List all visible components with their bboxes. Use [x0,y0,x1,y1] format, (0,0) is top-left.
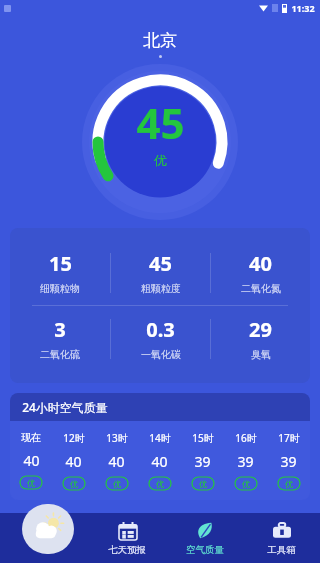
staticText: 优 [70,479,78,489]
staticText: 12时 [63,431,85,445]
button[interactable]: Weather [22,504,74,554]
button[interactable]: 14时 [138,431,181,490]
staticText: 11:32 [291,2,315,14]
staticText: 45 [149,250,172,277]
staticText: 39 [280,452,297,471]
staticText: 40 [65,452,82,471]
staticText: 14时 [149,431,171,445]
staticText: 24小时空气质量 [22,399,108,415]
staticText: 工具箱 [267,544,296,556]
staticText: 16时 [235,431,257,445]
button[interactable]: 3 [10,316,110,361]
staticText: 优 [242,479,250,489]
button[interactable]: 40 [211,250,310,295]
button[interactable]: 空气质量 [166,513,243,563]
button[interactable]: 现在 [10,431,52,489]
staticText: 粗颗粒度 [141,282,181,295]
staticText: 29 [249,316,272,343]
staticText: 二氧化硫 [40,348,80,361]
staticText: 优 [285,479,293,489]
staticText: 七天预报 [108,544,146,556]
staticText: 二氧化氮 [241,282,281,295]
staticText: 45 [136,94,185,151]
staticText: 3 [54,316,66,343]
staticText: 39 [237,452,254,471]
staticText: 空气质量 [186,544,224,556]
button[interactable]: 16时 [224,431,267,490]
staticText: 优 [154,152,167,168]
staticText: 15 [49,250,72,277]
staticText: 39 [194,452,211,471]
staticText: 优 [27,478,35,488]
staticText: 优 [113,479,121,489]
button[interactable]: 12时 [52,431,95,490]
staticText: 13时 [106,431,128,445]
button[interactable]: 0.3 [111,316,210,361]
button[interactable]: 15时 [181,431,224,490]
staticText: 北京 [0,30,320,51]
staticText: 细颗粒物 [40,282,80,295]
staticText: 40 [108,452,125,471]
staticText: 现在 [21,431,41,444]
button[interactable]: 七天预报 [88,513,166,563]
button[interactable]: 45 [111,250,210,295]
staticText: 优 [156,479,164,489]
button[interactable]: 工具箱 [243,513,320,563]
staticText: 臭氧 [251,348,271,361]
staticText: 优 [199,479,207,489]
button[interactable]: 15 [10,250,110,295]
button[interactable]: 17时 [267,431,310,490]
button[interactable]: 13时 [95,431,138,490]
staticText: 40 [151,452,168,471]
staticText: 17时 [278,431,300,445]
staticText: 一氧化碳 [141,348,181,361]
staticText: 15时 [192,431,214,445]
staticText: 40 [249,250,272,277]
button[interactable]: 29 [211,316,310,361]
staticText: 40 [23,451,40,470]
staticText: 0.3 [146,316,175,343]
